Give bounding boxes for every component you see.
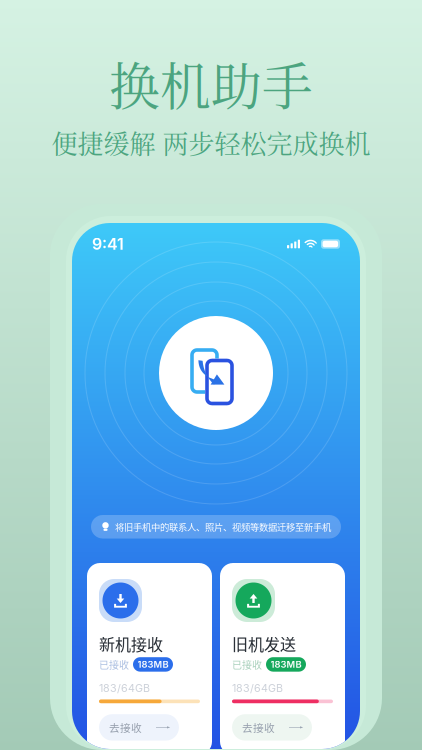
staticText: 183MB (137, 659, 168, 670)
staticText: 去接收 (242, 720, 275, 735)
staticText: 9:41 (92, 234, 124, 254)
staticText: 去接收 (109, 720, 142, 735)
staticText: 183/64GB (99, 682, 150, 695)
staticText: 新机接收 (99, 632, 163, 655)
staticText: 换机助手 (109, 47, 313, 120)
staticText: 旧机发送 (232, 632, 296, 655)
button[interactable]: 新机接收 (87, 563, 212, 750)
staticText: 已接收 (232, 657, 262, 672)
staticText: 便捷缓解 两步轻松完成换机 (51, 124, 370, 161)
staticText: 将旧手机中的联系人、照片、视频等数据迁移至新手机 (115, 520, 331, 533)
staticText: 183MB (270, 659, 301, 670)
staticText: 183/64GB (232, 682, 283, 695)
staticText: 已接收 (99, 657, 129, 672)
button[interactable]: 旧机发送 (220, 563, 345, 750)
